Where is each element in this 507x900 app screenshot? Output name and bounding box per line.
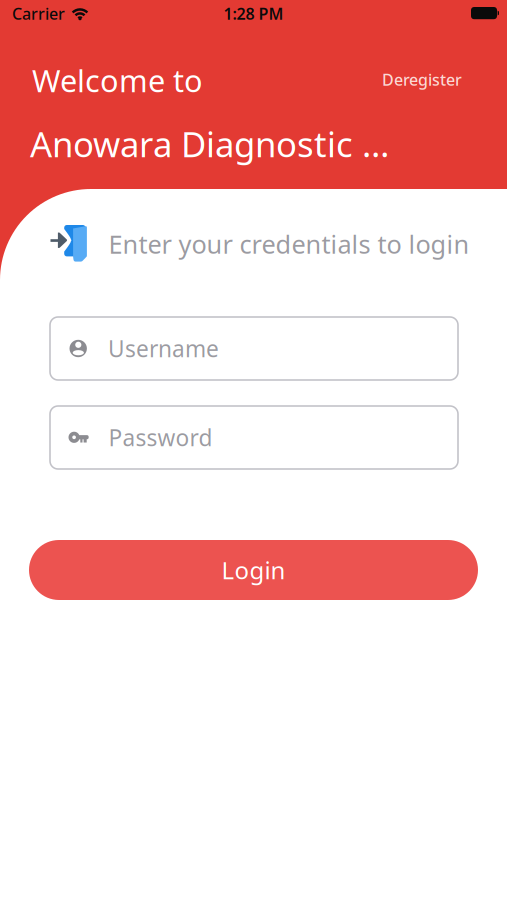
staticText: 1:28 PM <box>223 3 283 24</box>
staticText: Login <box>221 554 285 586</box>
staticText: Welcome to <box>32 60 203 101</box>
staticText: Carrier <box>12 3 65 24</box>
button[interactable]: Password <box>50 406 458 469</box>
staticText: Enter your credentials to login <box>108 227 469 261</box>
button[interactable]: Username <box>50 317 458 380</box>
button[interactable]: Deregister <box>382 69 462 101</box>
staticText: Deregister <box>382 69 462 90</box>
staticText: Password <box>108 422 212 452</box>
staticText: Username <box>108 333 219 363</box>
staticText: Anowara Diagnostic … <box>30 121 389 167</box>
button[interactable]: Login <box>29 540 478 600</box>
